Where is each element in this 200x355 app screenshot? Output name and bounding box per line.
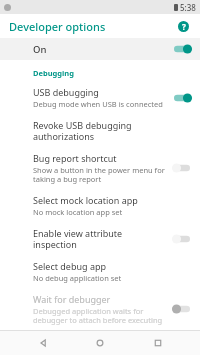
- button[interactable]: Toggle: [172, 92, 192, 104]
- button[interactable]: Select debug app: [0, 255, 200, 288]
- staticText: Enable view attribute inspection: [33, 227, 166, 250]
- staticText: Select mock location app: [33, 194, 138, 206]
- button[interactable]: Back: [28, 331, 58, 355]
- button[interactable]: Select mock location app: [0, 189, 200, 222]
- button[interactable]: Help: [174, 17, 192, 35]
- button[interactable]: Home: [85, 331, 115, 355]
- button[interactable]: Wait for debugger: [0, 288, 200, 330]
- staticText: Wait for debugger: [33, 293, 111, 305]
- staticText: ?: [182, 21, 186, 32]
- button[interactable]: On: [0, 38, 200, 60]
- button[interactable]: Revoke USB debugging authorizations: [0, 114, 200, 147]
- button[interactable]: Toggle: [172, 43, 192, 55]
- button[interactable]: USB debugging: [0, 81, 200, 114]
- staticText: Debugging: [33, 68, 74, 78]
- staticText: USB debugging: [33, 86, 99, 98]
- button[interactable]: Bug report shortcut: [0, 147, 200, 189]
- button[interactable]: Toggle: [172, 303, 192, 315]
- staticText: Bug report shortcut: [33, 152, 117, 164]
- staticText: Debugged application waits for debugger …: [33, 306, 166, 325]
- staticText: Debug mode when USB is connected: [33, 99, 163, 109]
- staticText: 5:38: [180, 2, 196, 13]
- button[interactable]: Toggle: [172, 233, 192, 245]
- button[interactable]: Toggle: [172, 162, 192, 174]
- staticText: Developer options: [9, 19, 106, 34]
- staticText: Show a button in the power menu for taki…: [33, 165, 166, 184]
- staticText: Revoke USB debugging authorizations: [33, 119, 192, 142]
- staticText: No debug application set: [33, 273, 122, 283]
- button[interactable]: Enable view attribute inspection: [0, 222, 200, 255]
- staticText: On: [33, 43, 47, 56]
- staticText: Select debug app: [33, 260, 107, 272]
- button[interactable]: Recent apps: [143, 331, 173, 355]
- staticText: No mock location app set: [33, 207, 123, 217]
